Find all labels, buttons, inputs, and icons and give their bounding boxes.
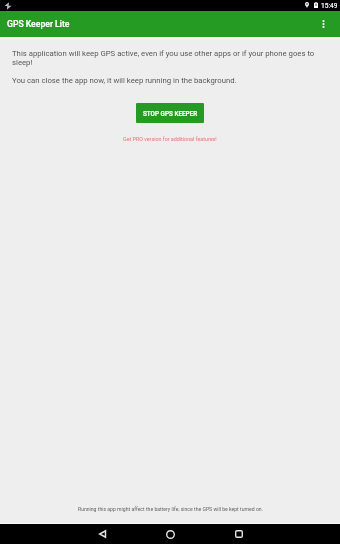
button[interactable]: STOP GPS KEEPER: [136, 103, 204, 123]
button[interactable]: Recents: [229, 524, 249, 544]
button[interactable]: More options: [312, 13, 334, 35]
staticText: STOP GPS KEEPER: [143, 110, 198, 117]
staticText: You can close the app now, it will keep …: [12, 76, 237, 85]
staticText: GPS Keeper Lite: [7, 19, 70, 29]
button[interactable]: Back: [92, 524, 112, 544]
staticText: Running this app might affect the batter…: [78, 506, 263, 512]
button[interactable]: Get PRO version for additional features!: [123, 136, 217, 142]
staticText: 15:49: [321, 2, 338, 10]
button[interactable]: Home: [160, 524, 180, 544]
staticText: This application will keep GPS active, e…: [12, 49, 316, 67]
